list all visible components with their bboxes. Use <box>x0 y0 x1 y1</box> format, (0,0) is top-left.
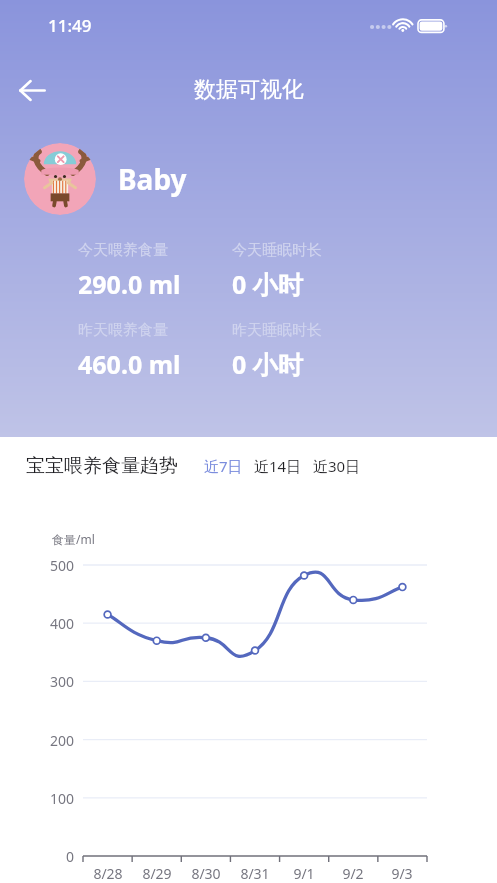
staticText: 8/31 <box>231 864 279 883</box>
staticText: 近30日 <box>313 456 361 476</box>
staticText: 0 小时 <box>232 347 303 381</box>
staticText: 食量/ml <box>52 531 95 547</box>
staticText: 9/1 <box>280 864 328 883</box>
staticText: 11:49 <box>48 14 92 37</box>
staticText: Baby <box>118 160 187 198</box>
staticText: 8/30 <box>182 864 230 883</box>
staticText: 200 <box>22 731 74 750</box>
staticText: 8/29 <box>133 864 181 883</box>
staticText: 300 <box>22 672 74 691</box>
staticText: 8/28 <box>84 864 132 883</box>
staticText: 近7日 <box>204 456 243 476</box>
button[interactable]: Back <box>8 66 56 114</box>
staticText: 昨天喂养食量 <box>78 321 168 340</box>
staticText: 9/3 <box>378 864 426 883</box>
staticText: 100 <box>22 789 74 808</box>
staticText: 400 <box>22 614 74 633</box>
staticText: 500 <box>22 556 74 575</box>
staticText: 今天睡眠时长 <box>232 241 322 260</box>
staticText: 数据可视化 <box>194 76 304 104</box>
staticText: 昨天睡眠时长 <box>232 321 322 340</box>
staticText: 0 小时 <box>232 267 303 301</box>
staticText: 今天喂养食量 <box>78 241 168 260</box>
staticText: 0 <box>22 847 74 866</box>
button[interactable]: 近30日 <box>311 451 363 481</box>
staticText: 近14日 <box>254 456 302 476</box>
button[interactable]: 近7日 <box>202 451 245 481</box>
button[interactable]: Baby avatar <box>24 143 96 215</box>
staticText: 宝宝喂养食量趋势 <box>26 454 178 478</box>
staticText: 9/2 <box>329 864 377 883</box>
button[interactable]: 近14日 <box>252 451 304 481</box>
staticText: 290.0 ml <box>78 267 181 301</box>
staticText: 460.0 ml <box>78 347 181 381</box>
